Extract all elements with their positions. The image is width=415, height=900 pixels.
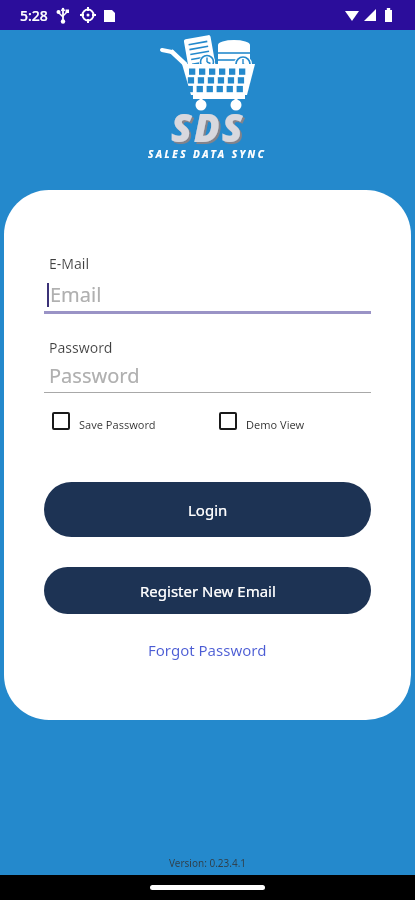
- button[interactable]: Register New Email: [44, 567, 371, 614]
- staticText: SDS: [173, 103, 247, 155]
- button[interactable]: Demo View: [219, 410, 305, 432]
- staticText: Password: [49, 338, 113, 357]
- staticText: Version: 0.23.4.1: [169, 856, 247, 870]
- staticText: Register New Email: [140, 581, 276, 601]
- button[interactable]: Password: [49, 362, 140, 389]
- staticText: Login: [188, 500, 228, 520]
- staticText: SDS: [171, 101, 245, 153]
- staticText: E-Mail: [49, 254, 90, 273]
- staticText: Save Password: [79, 417, 156, 432]
- staticText: Email: [50, 281, 102, 308]
- button[interactable]: Save Password: [52, 410, 156, 432]
- button[interactable]: Forgot Password: [148, 640, 267, 660]
- staticText: SALES DATA SYNC: [148, 147, 267, 161]
- button[interactable]: Login: [44, 482, 371, 537]
- staticText: Demo View: [246, 417, 305, 432]
- button[interactable]: Email: [47, 281, 102, 308]
- staticText: 5:28: [20, 6, 48, 25]
